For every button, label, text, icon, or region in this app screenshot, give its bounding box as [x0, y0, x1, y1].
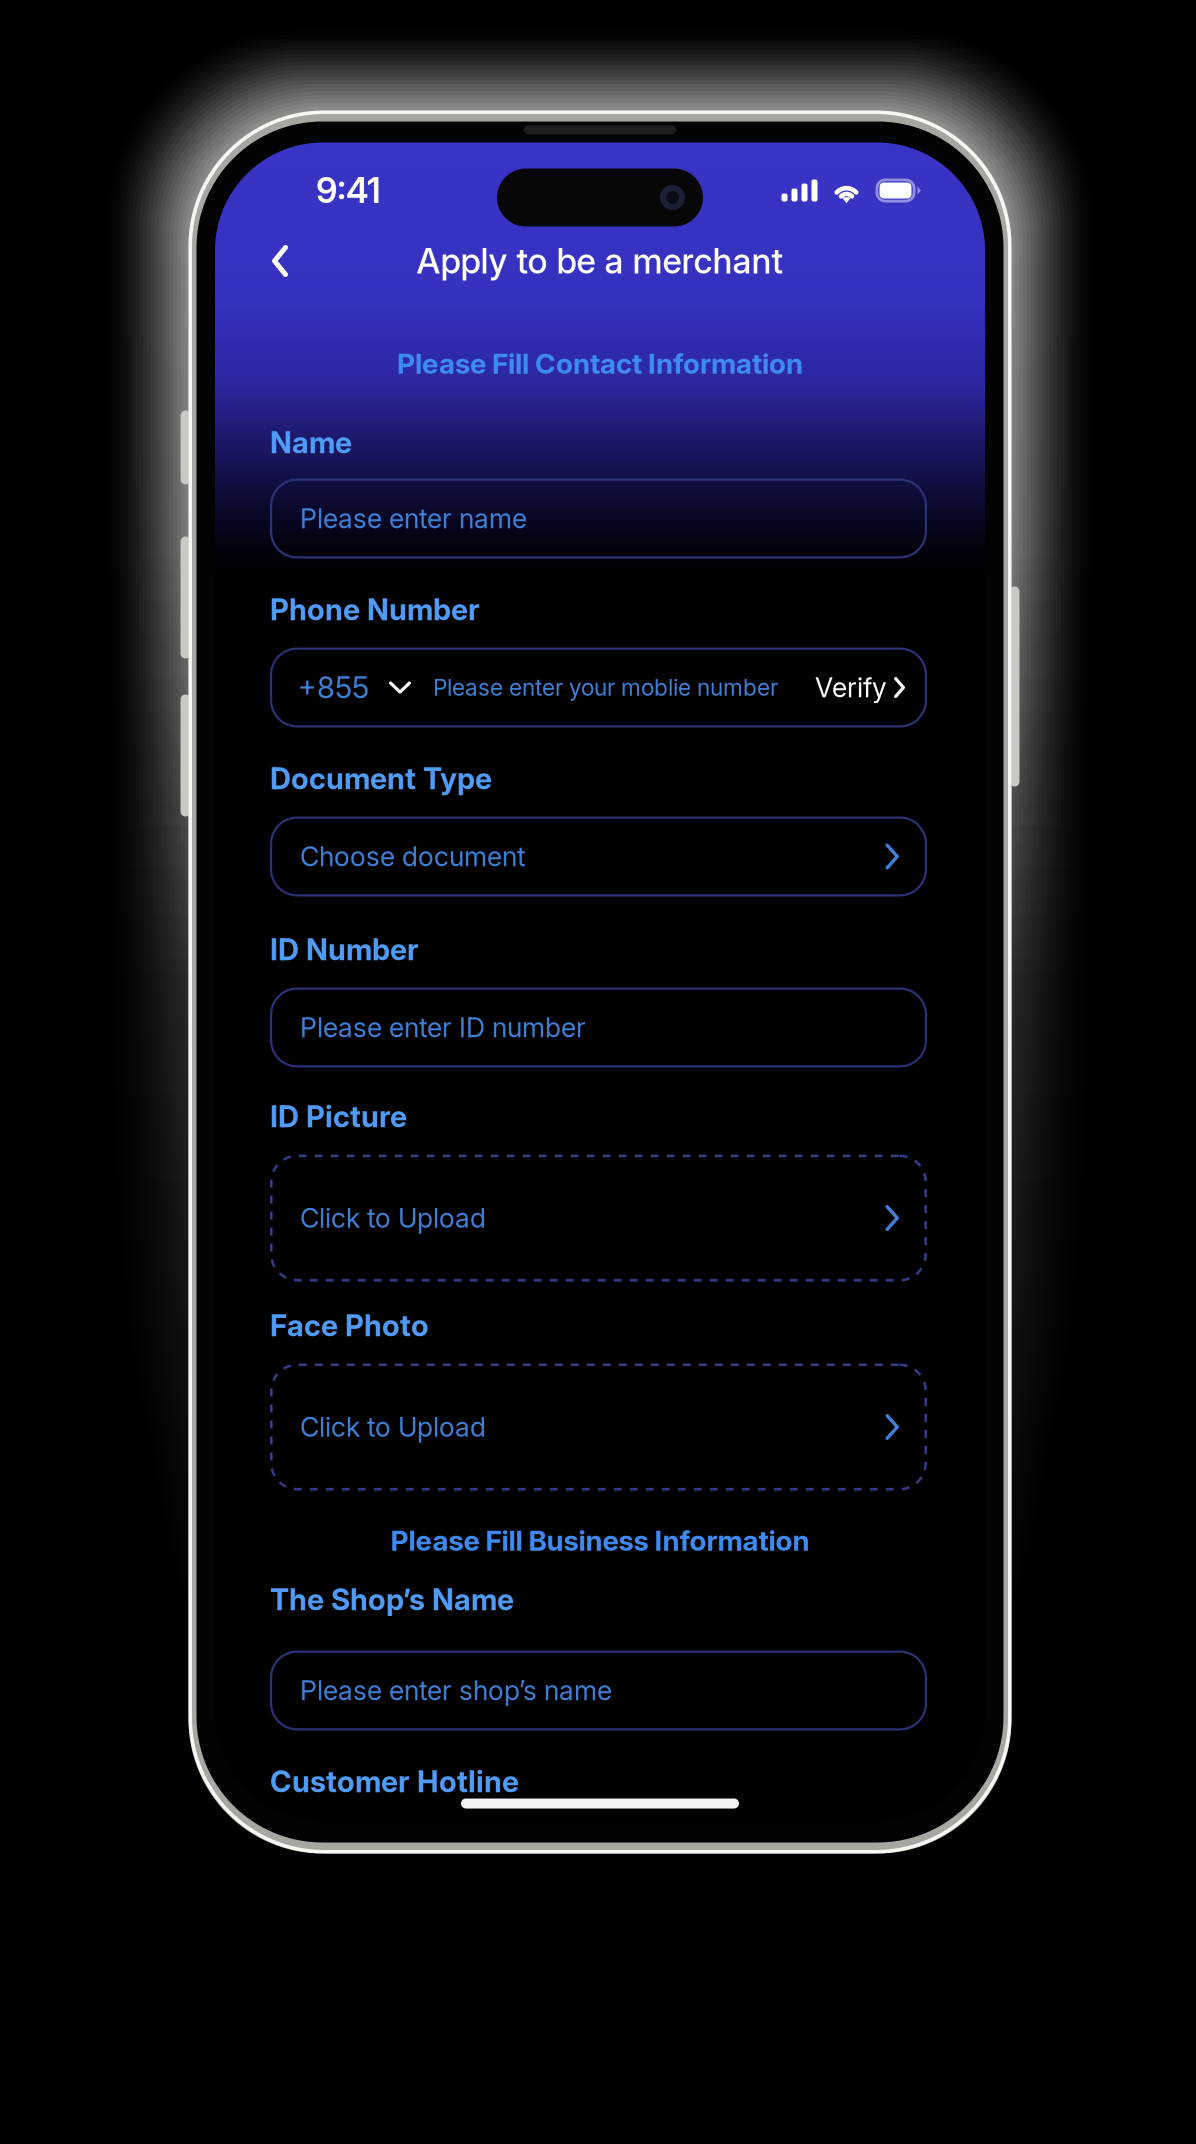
- staticText: Document Type: [270, 761, 492, 796]
- staticText: Phone Number: [270, 592, 480, 627]
- staticText: Click to Upload: [300, 1202, 486, 1234]
- staticText: ID Picture: [270, 1099, 407, 1134]
- staticText: Face Photo: [270, 1308, 429, 1343]
- staticText: Please Fill Contact Information: [397, 347, 803, 380]
- staticText: +855: [298, 670, 369, 705]
- staticText: Please enter ID number: [300, 1011, 586, 1044]
- staticText: Please Fill Business Information: [390, 1524, 809, 1557]
- staticText: ID Number: [270, 932, 419, 967]
- button[interactable]: Click to Upload: [270, 1154, 927, 1281]
- staticText: 9:41: [316, 169, 381, 211]
- staticText: Click to Upload: [300, 1411, 486, 1443]
- button[interactable]: Choose document: [270, 816, 927, 896]
- staticText: The Shop’s Name: [270, 1582, 514, 1617]
- staticText: Verify: [815, 671, 887, 704]
- button[interactable]: Click to Upload: [270, 1363, 927, 1490]
- staticText: Apply to be a merchant: [416, 240, 783, 282]
- staticText: Please enter name: [300, 502, 527, 535]
- staticText: Customer Hotline: [270, 1764, 519, 1799]
- button[interactable]: Back: [257, 238, 303, 283]
- button[interactable]: Verify: [815, 671, 905, 704]
- staticText: Please enter shop’s name: [300, 1674, 612, 1707]
- staticText: Please enter your moblie number: [433, 674, 778, 701]
- staticText: Name: [270, 425, 352, 460]
- staticText: Choose document: [300, 840, 526, 873]
